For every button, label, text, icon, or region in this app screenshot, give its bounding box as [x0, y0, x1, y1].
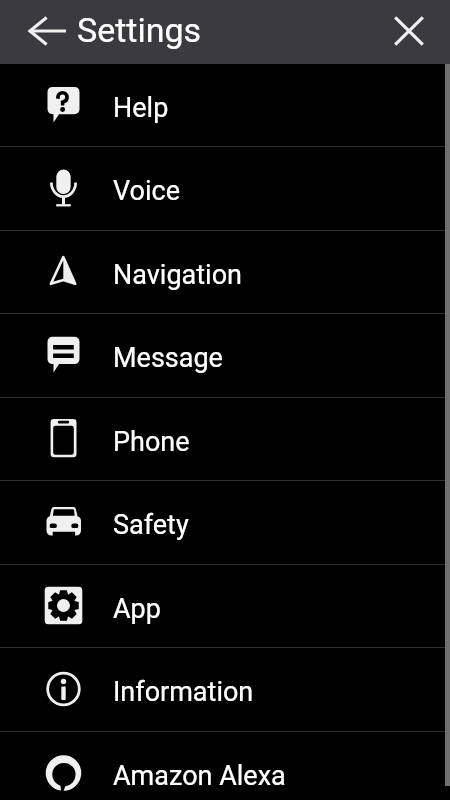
staticText: Information — [113, 676, 254, 708]
staticText: Amazon Alexa — [113, 760, 286, 792]
button[interactable]: App — [0, 565, 450, 648]
button[interactable]: Help — [0, 64, 450, 147]
button[interactable]: Message — [0, 314, 450, 398]
staticText: Navigation — [113, 259, 242, 291]
staticText: Voice — [113, 175, 180, 207]
button[interactable]: Safety — [0, 481, 450, 565]
staticText: App — [113, 593, 161, 625]
button[interactable]: Voice — [0, 147, 450, 231]
staticText: Message — [113, 342, 223, 374]
button[interactable]: Information — [0, 648, 450, 732]
button[interactable]: Navigation — [0, 231, 450, 314]
button[interactable]: Phone — [0, 398, 450, 481]
staticText: Safety — [113, 509, 189, 541]
button[interactable]: Back — [18, 1, 78, 61]
staticText: Phone — [113, 426, 190, 458]
button[interactable]: Amazon Alexa — [0, 732, 450, 800]
staticText: Help — [113, 92, 169, 124]
button[interactable]: Close — [379, 1, 439, 61]
staticText: Settings — [77, 10, 202, 50]
